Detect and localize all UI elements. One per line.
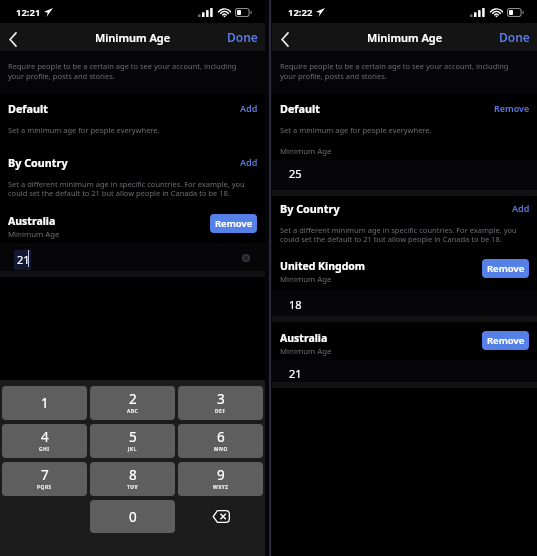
staticText: 0: [129, 508, 137, 526]
button[interactable]: 3: [178, 386, 263, 420]
staticText: 25: [289, 166, 302, 181]
staticText: 3: [217, 390, 225, 408]
staticText: Minimum Age: [280, 274, 332, 285]
staticText: 5: [129, 428, 137, 446]
staticText: Default: [8, 101, 48, 116]
staticText: Done: [227, 29, 258, 45]
button[interactable]: 2: [90, 386, 175, 420]
staticText: Set a minimum age for people everywhere.: [8, 125, 253, 135]
staticText: Add: [240, 156, 258, 168]
staticText: 9: [217, 466, 225, 484]
staticText: Require people to be a certain age to se…: [280, 61, 525, 81]
staticText: 7: [41, 466, 49, 484]
button[interactable]: Add: [240, 156, 258, 168]
button[interactable]: Remove: [482, 259, 529, 278]
staticText: Add: [512, 202, 530, 214]
staticText: 6: [217, 428, 225, 446]
button[interactable]: 0: [90, 500, 175, 533]
button[interactable]: 8: [90, 462, 175, 496]
staticText: Done: [499, 29, 530, 45]
staticText: PQRS: [37, 484, 52, 491]
staticText: MNO: [214, 446, 228, 453]
staticText: By Country: [280, 201, 340, 216]
button[interactable]: 1: [2, 386, 87, 420]
staticText: 12:22: [288, 6, 313, 19]
staticText: Set a different minimum age in specific …: [280, 225, 525, 245]
button[interactable]: Add: [512, 202, 530, 214]
button[interactable]: 6: [178, 424, 263, 458]
staticText: DEF: [215, 408, 226, 415]
staticText: Remove: [215, 217, 253, 230]
staticText: By Country: [8, 155, 68, 170]
staticText: Require people to be a certain age to se…: [8, 61, 253, 81]
button[interactable]: Add: [240, 102, 258, 114]
staticText: United Kingdom: [280, 259, 366, 273]
staticText: 21: [289, 366, 302, 381]
button[interactable]: 5: [90, 424, 175, 458]
button[interactable]: Done: [219, 23, 265, 51]
staticText: Add: [240, 102, 258, 114]
button[interactable]: 9: [178, 462, 263, 496]
staticText: Minimum Age: [280, 346, 332, 357]
staticText: JKL: [128, 446, 138, 453]
staticText: Remove: [487, 334, 525, 347]
staticText: Default: [280, 101, 320, 116]
button[interactable]: Delete: [178, 500, 263, 533]
button[interactable]: Remove: [210, 214, 257, 233]
staticText: 1: [41, 394, 49, 412]
button[interactable]: 7: [2, 462, 87, 496]
staticText: Remove: [494, 102, 530, 114]
button[interactable]: Remove: [482, 331, 529, 350]
button[interactable]: Remove: [494, 102, 530, 114]
staticText: TUV: [127, 484, 139, 491]
button[interactable]: Back: [0, 23, 27, 51]
staticText: Minimum Age: [95, 30, 171, 45]
staticText: Australia: [280, 331, 328, 345]
button[interactable]: Done: [491, 23, 537, 51]
staticText: 12:21: [16, 6, 41, 19]
staticText: Minimum Age: [8, 229, 60, 240]
staticText: ABC: [127, 408, 139, 415]
staticText: 4: [41, 428, 49, 446]
staticText: Set a different minimum age in specific …: [8, 179, 253, 199]
staticText: Minimum Age: [367, 30, 443, 45]
staticText: 18: [289, 297, 302, 312]
button[interactable]: 4: [2, 424, 87, 458]
staticText: WXYZ: [213, 484, 229, 491]
button[interactable]: Back: [272, 23, 299, 51]
staticText: GHI: [39, 446, 50, 453]
staticText: 2: [129, 390, 137, 408]
staticText: 8: [129, 466, 137, 484]
staticText: Minimum Age: [280, 146, 332, 157]
staticText: Remove: [487, 262, 525, 275]
staticText: 21: [17, 252, 30, 267]
staticText: Australia: [8, 214, 56, 228]
staticText: Set a minimum age for people everywhere.: [280, 125, 525, 135]
